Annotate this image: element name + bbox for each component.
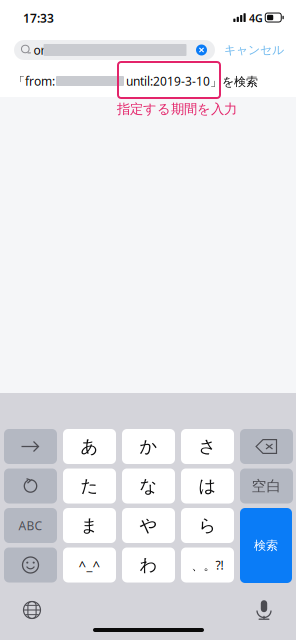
button[interactable]: Delete [240,429,293,464]
button[interactable]: や [122,508,175,543]
button[interactable]: Switch keyboard [21,599,43,621]
button[interactable]: Next candidate [4,429,57,464]
staticText: た [80,475,98,497]
staticText: は [198,475,216,497]
button[interactable]: わ [122,547,175,582]
button[interactable]: た [63,468,116,503]
button[interactable]: Clear text [195,43,208,56]
staticText: さ [198,436,216,457]
button[interactable]: さ [181,429,234,464]
staticText: ま [80,515,98,536]
button[interactable]: ^_^ [63,547,116,582]
staticText: な [139,475,157,497]
staticText: ABC [18,517,42,533]
button[interactable]: キャンセル [218,39,284,61]
button[interactable]: あ [63,429,116,464]
staticText: か [139,436,157,457]
button[interactable]: な [122,468,175,503]
staticText: until:2019-3-10」を検索 [126,73,258,89]
button[interactable]: 検索 [240,508,292,583]
button[interactable]: ABC [4,508,57,543]
staticText: ら [198,515,216,536]
staticText: 指定する期間を入力 [117,101,237,117]
staticText: 17:33 [23,10,54,26]
button[interactable]: Emoji [4,547,57,582]
button[interactable]: Dictate [253,599,275,621]
button[interactable]: 空白 [240,468,293,503]
staticText: 検索 [254,538,278,553]
staticText: ^_^ [78,556,100,574]
button[interactable]: は [181,468,234,503]
button[interactable]: 「from: [13,73,293,89]
button[interactable]: Undo [4,468,57,503]
button[interactable]: 、。?! [181,547,234,582]
staticText: 4G [249,11,263,25]
staticText: 「from: [13,73,55,89]
staticText: or [34,42,46,58]
staticText: キャンセル [224,43,284,57]
button[interactable]: か [122,429,175,464]
button[interactable]: ら [181,508,234,543]
staticText: あ [80,436,98,457]
staticText: 空白 [251,477,281,495]
staticText: 、。?! [191,557,223,573]
staticText: わ [139,554,157,576]
staticText: や [139,515,157,536]
button[interactable]: ま [63,508,116,543]
